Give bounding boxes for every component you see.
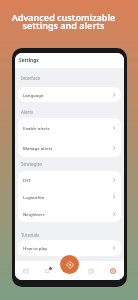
staticText: Advanced customizable settings and alert… [0, 11, 127, 31]
staticText: Language [23, 92, 44, 98]
staticText: Settings [19, 57, 39, 64]
button[interactable]: Manage alerts [18, 138, 121, 157]
button[interactable]: DST [18, 171, 121, 188]
button[interactable]: Language [18, 87, 121, 102]
staticText: Neighbors [23, 211, 45, 217]
staticText: Tutorials [21, 232, 40, 238]
button[interactable]: Stats [80, 261, 102, 280]
staticText: Manage alerts [23, 145, 53, 151]
staticText: DST [23, 177, 31, 183]
button[interactable]: New game [60, 255, 79, 274]
staticText: Alerts [21, 109, 34, 115]
button[interactable]: Enable alerts [18, 118, 121, 138]
staticText: Strategies [21, 161, 43, 167]
button[interactable]: Alerts [36, 261, 58, 280]
button[interactable]: How to play [18, 240, 121, 256]
staticText: How to play [23, 245, 48, 251]
button[interactable]: Wallet [15, 261, 36, 280]
button[interactable]: Logarithm [18, 188, 121, 205]
staticText: Enable alerts [23, 125, 50, 131]
button[interactable]: Settings [102, 261, 124, 280]
button[interactable]: Neighbors [18, 205, 121, 222]
staticText: Logarithm [23, 194, 45, 200]
staticText: Interface [21, 75, 41, 81]
button[interactable]: Play [58, 261, 80, 280]
